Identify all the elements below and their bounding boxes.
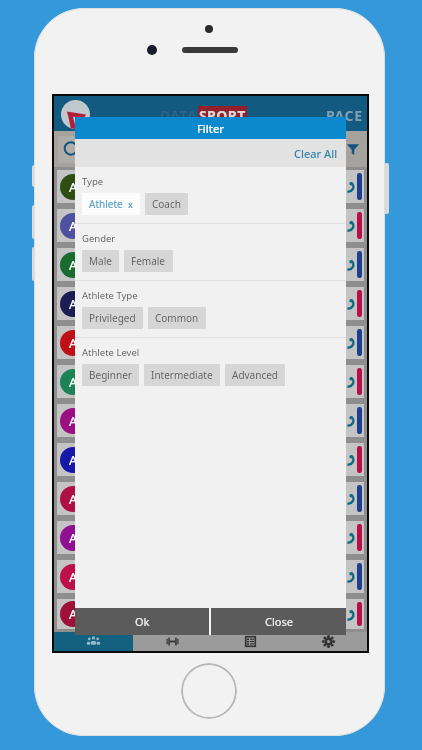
staticText: Common bbox=[155, 311, 199, 325]
staticText: Close bbox=[265, 614, 293, 629]
button[interactable]: A bbox=[57, 170, 364, 203]
staticText: Gender bbox=[82, 232, 116, 245]
staticText: Ok bbox=[135, 614, 150, 629]
button[interactable]: Reports bbox=[211, 632, 289, 651]
staticText: Athlete Type bbox=[82, 289, 138, 302]
button[interactable]: A bbox=[57, 326, 364, 359]
staticText: Female bbox=[131, 254, 166, 268]
button[interactable]: A bbox=[57, 443, 364, 476]
staticText: Filter bbox=[197, 121, 224, 136]
staticText: Intermediate bbox=[151, 368, 213, 382]
button[interactable]: Close bbox=[211, 608, 346, 635]
staticText: Athlete Level bbox=[82, 346, 140, 359]
button[interactable]: A bbox=[57, 482, 364, 515]
staticText: Coach bbox=[152, 197, 181, 211]
staticText: A bbox=[69, 373, 78, 391]
staticText: A bbox=[69, 217, 78, 235]
button[interactable]: Ok bbox=[75, 608, 209, 635]
button[interactable]: A bbox=[57, 404, 364, 437]
button[interactable]: A bbox=[57, 599, 364, 629]
staticText: A bbox=[69, 256, 78, 274]
staticText: DATA bbox=[160, 106, 198, 125]
button[interactable]: Female bbox=[124, 250, 173, 272]
button[interactable]: Intermediate bbox=[144, 364, 220, 386]
staticText: Type bbox=[82, 175, 104, 188]
staticText: Advanced bbox=[232, 368, 278, 382]
button[interactable]: Training bbox=[133, 632, 211, 651]
staticText: A bbox=[69, 451, 78, 469]
staticText: Male bbox=[89, 254, 112, 268]
button[interactable]: A bbox=[57, 248, 364, 281]
staticText: A bbox=[69, 529, 78, 547]
staticText: PACE bbox=[326, 106, 363, 125]
staticText: A bbox=[69, 412, 78, 430]
staticText: A bbox=[69, 178, 78, 196]
button[interactable]: Settings bbox=[289, 632, 367, 651]
staticText: x bbox=[128, 198, 133, 210]
button[interactable]: Privileged bbox=[82, 307, 143, 329]
staticText: A bbox=[69, 490, 78, 508]
staticText: Beginner bbox=[89, 368, 132, 382]
staticText: Athlete bbox=[89, 197, 123, 211]
button[interactable]: A bbox=[57, 365, 364, 398]
button[interactable]: A bbox=[57, 521, 364, 554]
staticText: A bbox=[69, 605, 78, 623]
button[interactable]: Male bbox=[82, 250, 119, 272]
staticText: SPORT bbox=[199, 106, 246, 125]
button[interactable]: Athlete bbox=[82, 193, 140, 215]
staticText: A bbox=[69, 568, 78, 586]
button[interactable]: Common bbox=[148, 307, 206, 329]
button[interactable]: Home bbox=[181, 663, 237, 719]
staticText: A bbox=[69, 334, 78, 352]
button[interactable]: Advanced bbox=[225, 364, 285, 386]
button[interactable]: Athletes bbox=[54, 632, 133, 651]
button[interactable]: Beginner bbox=[82, 364, 139, 386]
button[interactable]: Clear All bbox=[286, 142, 346, 165]
button[interactable]: A bbox=[57, 209, 364, 242]
staticText: Clear All bbox=[294, 146, 338, 161]
staticText: Privileged bbox=[89, 311, 136, 325]
button[interactable]: A bbox=[57, 560, 364, 593]
staticText: A bbox=[69, 295, 78, 313]
button[interactable]: A bbox=[57, 287, 364, 320]
button[interactable]: Coach bbox=[145, 193, 188, 215]
